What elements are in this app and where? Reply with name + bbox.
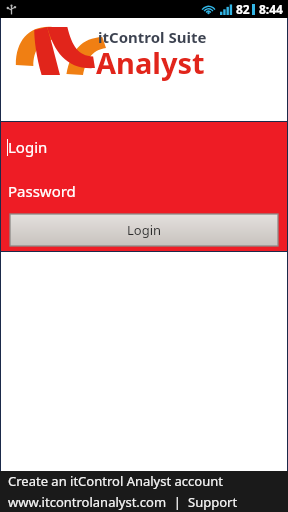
button[interactable]: Password <box>0 176 288 206</box>
staticText: Login <box>127 221 162 239</box>
other: USB connected <box>6 4 17 15</box>
staticText: Password <box>8 181 76 201</box>
other: Cellular signal <box>220 4 232 15</box>
staticText: Create an itControl Analyst account <box>8 472 223 490</box>
staticText: Support <box>188 493 238 511</box>
button[interactable]: Create an itControl Analyst account <box>0 471 288 491</box>
staticText: | <box>167 493 188 511</box>
staticText: 82 <box>236 1 250 17</box>
button[interactable]: Login <box>0 132 288 162</box>
button[interactable]: Login <box>10 214 278 246</box>
staticText: 8:44 <box>259 1 283 17</box>
staticText: itControl Suite <box>98 27 207 47</box>
staticText: Login <box>8 137 48 157</box>
staticText: www.itcontrolanalyst.com <box>8 493 167 511</box>
button[interactable]: Support <box>188 493 238 511</box>
button[interactable]: www.itcontrolanalyst.com <box>8 493 167 511</box>
other: Wi-Fi <box>202 4 215 15</box>
staticText: Analyst <box>96 43 205 82</box>
